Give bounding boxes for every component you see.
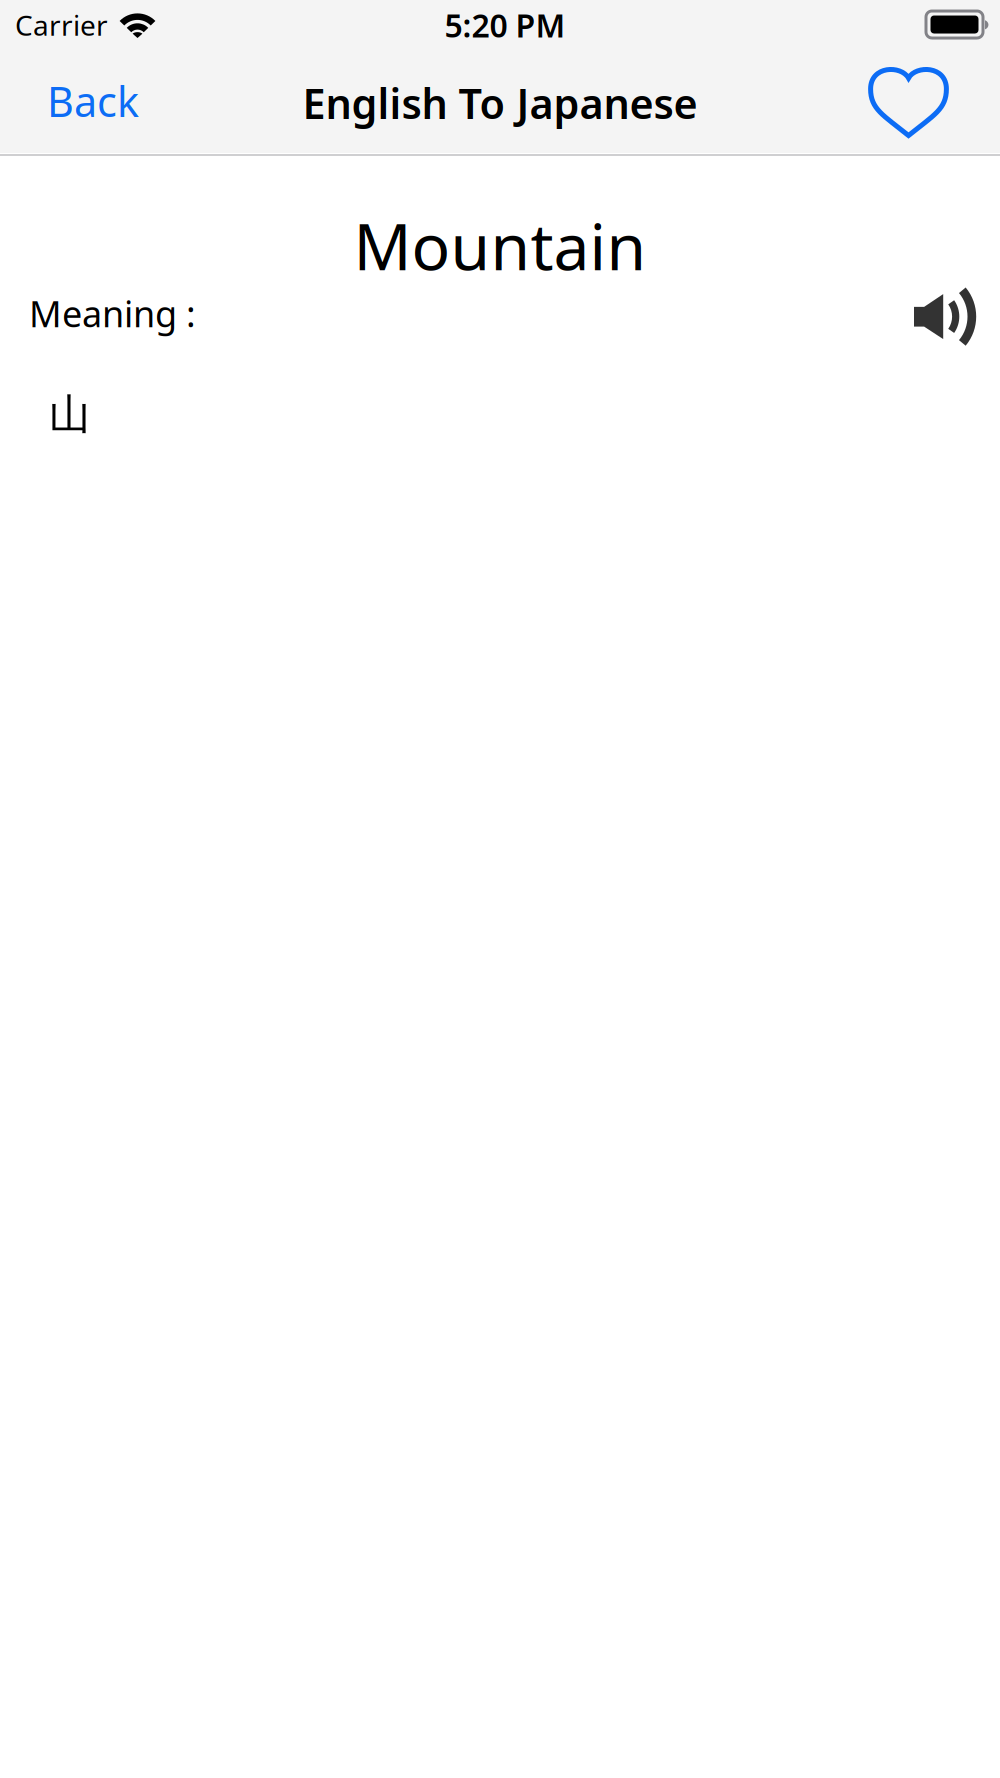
staticText: 山 [49,389,90,440]
staticText: Carrier [15,6,108,44]
staticText: 5:20 PM [444,4,565,46]
button[interactable]: Add to favourites [859,62,956,144]
staticText: Mountain [353,203,646,288]
staticText: Back [47,74,139,128]
staticText: English To Japanese [302,76,697,130]
button[interactable]: Play pronunciation [914,288,978,344]
staticText: Meaning : [29,289,196,337]
button[interactable]: Back [39,62,147,144]
